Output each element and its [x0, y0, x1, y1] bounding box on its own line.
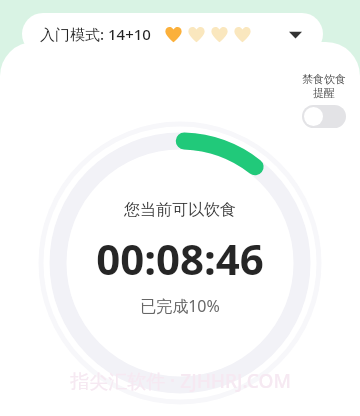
- button[interactable]: Expand mode选择: [285, 24, 305, 44]
- staticText: 禁食饮食: [302, 72, 346, 86]
- staticText: 入门模式: 14+10: [40, 24, 151, 44]
- button[interactable]: 禁食饮食: [302, 72, 346, 128]
- button[interactable]: 禁食饮食提醒开关: [302, 105, 346, 128]
- staticText: 已完成10%: [140, 295, 220, 317]
- staticText: 00:08:46: [96, 230, 264, 287]
- button[interactable]: 入门模式: 14+10: [22, 13, 323, 55]
- staticText: 提醒: [313, 86, 335, 100]
- staticText: 您当前可以饮食: [124, 200, 236, 220]
- staticText: 指尖汇软件 · ZJHHRJ.COM: [70, 368, 291, 394]
